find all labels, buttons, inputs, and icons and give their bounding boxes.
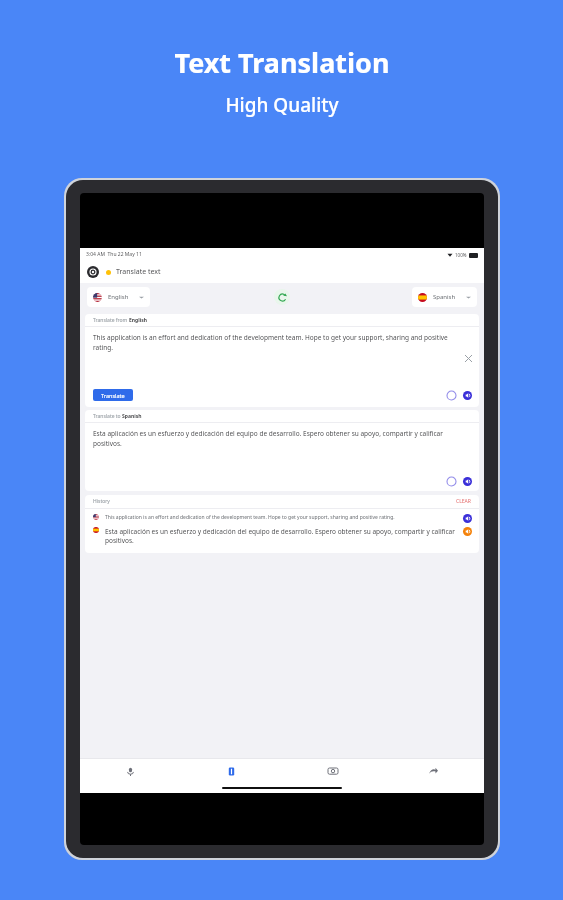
staticText: Esta aplicación es un esfuerzo y dedicac…: [105, 527, 458, 545]
staticText: English: [108, 293, 129, 301]
button[interactable]: Swap languages: [274, 289, 290, 305]
button[interactable]: Share: [383, 759, 484, 783]
button[interactable]: English: [87, 287, 150, 307]
staticText: English: [129, 317, 147, 324]
staticText: This application is an effort and dedica…: [93, 333, 465, 352]
button[interactable]: Camera: [282, 759, 383, 783]
staticText: Translate from: [93, 317, 129, 324]
staticText: 3:04 AM Thu 22 May 11: [86, 251, 142, 258]
button[interactable]: Speak: [463, 391, 472, 400]
staticText: Translate: [101, 392, 125, 399]
button[interactable]: Copy: [447, 477, 456, 486]
staticText: High Quality: [225, 92, 339, 118]
staticText: History: [93, 498, 110, 505]
staticText: Translate to: [93, 413, 122, 420]
staticText: Spanish: [433, 293, 456, 301]
button[interactable]: This application is an effort and dedica…: [85, 509, 479, 523]
staticText: 100%: [455, 252, 467, 258]
button[interactable]: CLEAR: [456, 498, 471, 505]
staticText: This application is an effort and dedica…: [105, 514, 458, 521]
button[interactable]: Translate: [93, 389, 133, 401]
staticText: CLEAR: [456, 498, 471, 505]
staticText: Esta aplicación es un esfuerzo y dedicac…: [93, 429, 465, 448]
button[interactable]: App icon: [87, 266, 99, 278]
button[interactable]: Esta aplicación es un esfuerzo y dedicac…: [85, 523, 479, 553]
button[interactable]: Text: [181, 759, 282, 783]
staticText: Translate text: [116, 267, 161, 277]
button[interactable]: Voice: [80, 759, 181, 783]
staticText: Spanish: [122, 413, 142, 420]
button[interactable]: Spanish: [412, 287, 477, 307]
button[interactable]: Copy: [447, 391, 456, 400]
button[interactable]: Clear text: [465, 355, 472, 362]
button[interactable]: Speak: [463, 477, 472, 486]
staticText: Text Translation: [174, 44, 390, 81]
